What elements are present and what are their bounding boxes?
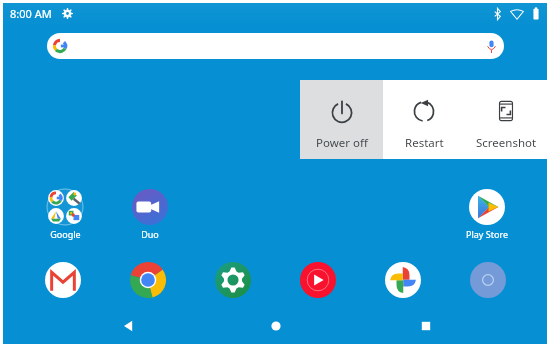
staticText: Power off bbox=[316, 135, 368, 151]
staticText: Restart bbox=[405, 135, 444, 151]
button[interactable]: Power off bbox=[300, 80, 383, 159]
button[interactable]: Settings bbox=[215, 262, 251, 298]
button[interactable]: Back bbox=[117, 315, 139, 337]
button[interactable]: Camera bbox=[470, 262, 506, 298]
staticText: Duo bbox=[141, 228, 159, 240]
button[interactable]: Photos bbox=[385, 262, 421, 298]
button[interactable]: Google bbox=[35, 188, 95, 240]
button[interactable]: YouTube Music bbox=[300, 262, 336, 298]
button[interactable]: Play Store bbox=[457, 188, 517, 240]
button[interactable]: Search bbox=[47, 33, 504, 59]
button[interactable]: Gmail bbox=[45, 262, 81, 298]
button[interactable]: Screenshot bbox=[465, 80, 547, 159]
button[interactable]: Recent apps bbox=[415, 315, 437, 337]
button[interactable]: Duo bbox=[120, 188, 180, 240]
button[interactable]: Chrome bbox=[130, 262, 166, 298]
staticText: Screenshot bbox=[476, 135, 537, 151]
staticText: Play Store bbox=[466, 228, 508, 240]
button[interactable]: Home bbox=[265, 315, 287, 337]
staticText: 8:00 AM bbox=[10, 6, 52, 21]
staticText: Google bbox=[50, 228, 81, 240]
button[interactable]: Restart bbox=[383, 80, 465, 159]
